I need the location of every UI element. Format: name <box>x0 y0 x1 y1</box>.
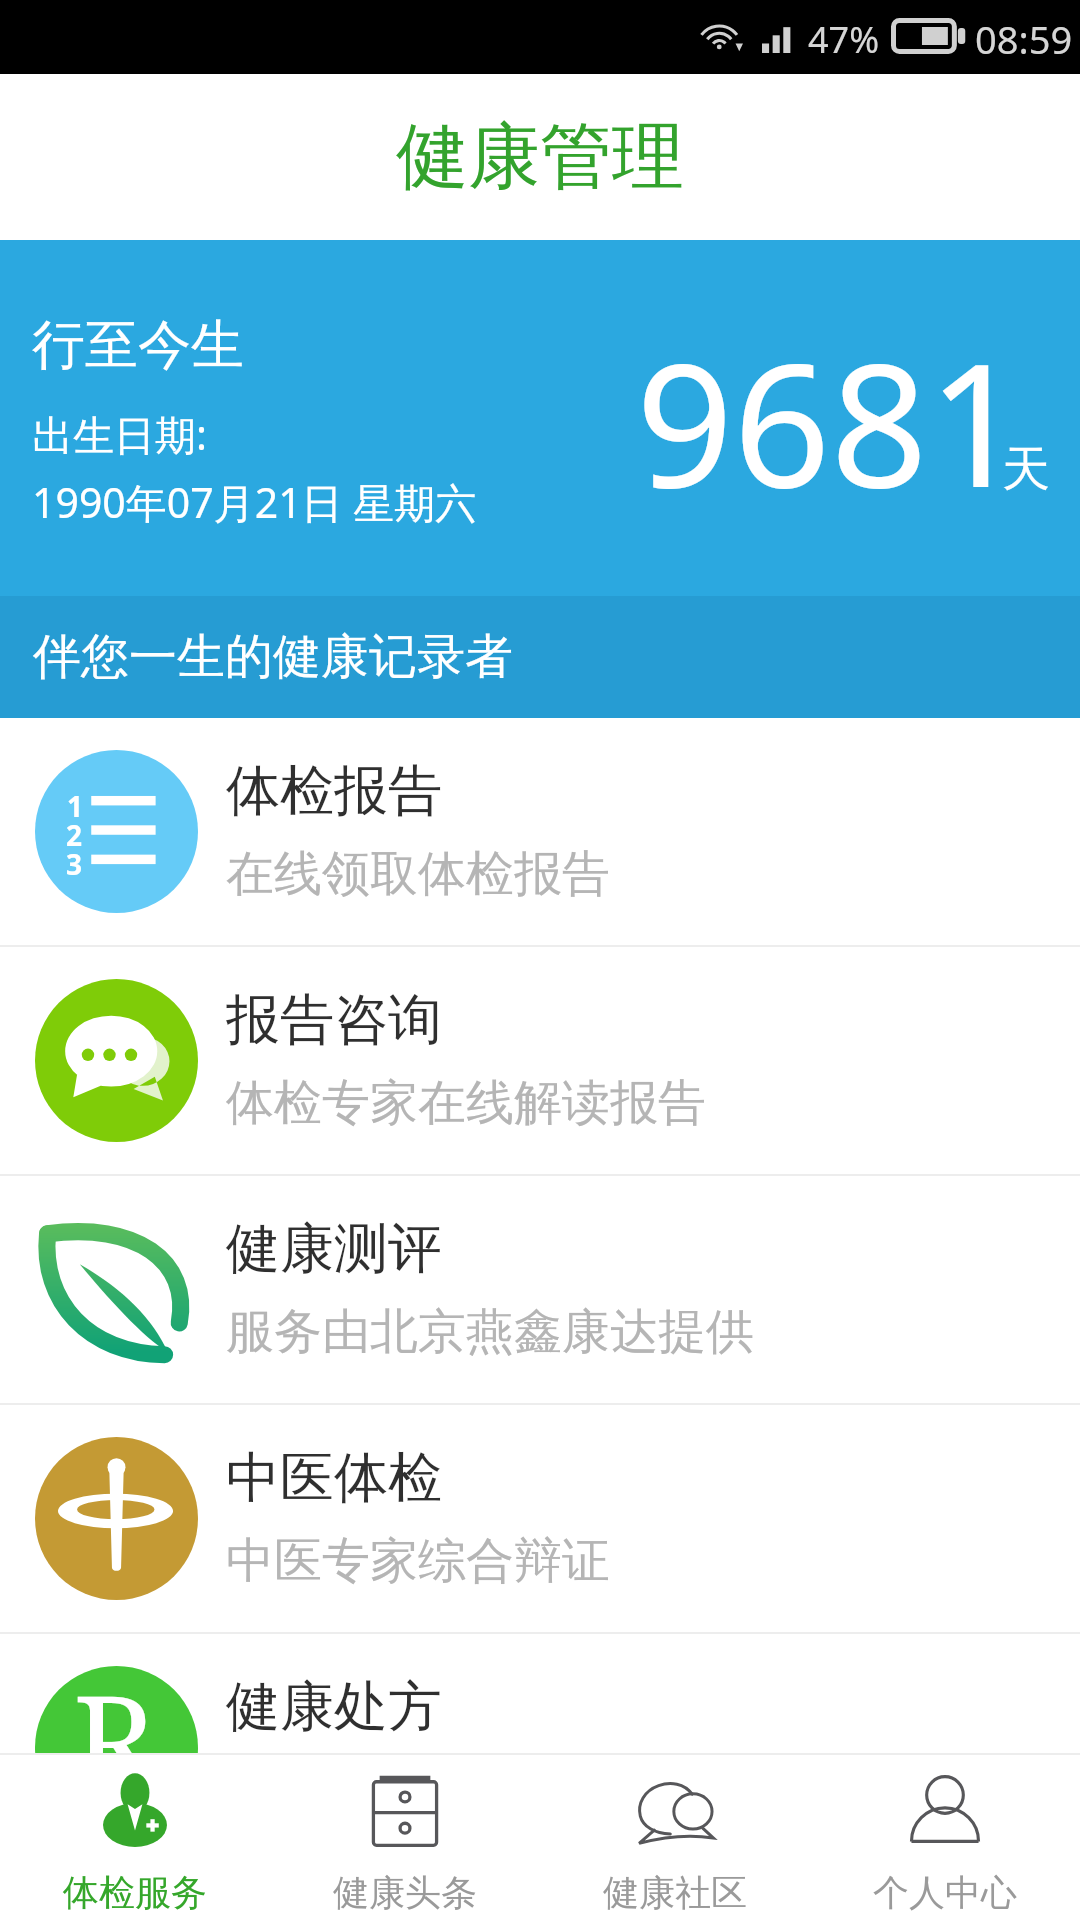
staticText: 健康社区 <box>603 1870 747 1915</box>
button[interactable]: 个人中心 <box>810 1755 1080 1920</box>
staticText: 08:59 <box>975 13 1073 65</box>
staticText: 2 <box>66 816 83 854</box>
staticText: 天 <box>1002 439 1050 499</box>
button[interactable]: 体检服务 <box>0 1755 270 1920</box>
staticText: 服务由北京燕鑫康达提供 <box>226 1302 754 1362</box>
staticText: 健康处方 <box>226 1673 442 1741</box>
staticText: 1990年07月21日 星期六 <box>32 474 477 530</box>
staticText: 中医体检 <box>226 1444 442 1512</box>
staticText: 47% <box>808 15 880 64</box>
staticText: 体检服务 <box>63 1870 207 1915</box>
button[interactable]: 健康头条 <box>270 1755 540 1920</box>
staticText: 健康测评 <box>226 1215 442 1283</box>
staticText: 伴您一生的健康记录者 <box>33 627 513 687</box>
staticText: 中医专家综合辩证 <box>226 1531 610 1591</box>
staticText: 9681 <box>636 305 1025 537</box>
staticText: R <box>73 1651 157 1753</box>
staticText: 行至今生 <box>32 312 244 379</box>
button[interactable]: 中医体检 <box>0 1405 1080 1632</box>
staticText: 3 <box>66 845 83 883</box>
staticText: 出生日期: <box>32 406 207 462</box>
staticText: 报告咨询 <box>226 986 442 1054</box>
button[interactable]: 健康社区 <box>540 1755 810 1920</box>
staticText: 体检报告 <box>226 757 442 825</box>
button[interactable]: 健康测评 <box>0 1176 1080 1403</box>
staticText: 个人中心 <box>873 1870 1017 1915</box>
staticText: 在线领取体检报告 <box>226 844 610 904</box>
staticText: 健康管理 <box>396 112 684 203</box>
button[interactable]: 报告咨询 <box>0 947 1080 1174</box>
button[interactable]: R <box>0 1634 1080 1753</box>
button[interactable]: 1 <box>0 718 1080 945</box>
staticText: 1 <box>67 787 84 825</box>
button[interactable]: 行至今生 9681 天 <box>0 240 1080 596</box>
staticText: 体检专家在线解读报告 <box>226 1073 706 1133</box>
staticText: 健康头条 <box>333 1870 477 1915</box>
